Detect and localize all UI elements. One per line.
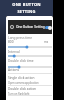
staticText: SETTING bbox=[17, 9, 36, 14]
button[interactable]: One Button Setting bbox=[8, 20, 52, 34]
staticText: ONE BUTTON bbox=[12, 2, 41, 7]
staticText: One Button Setting bbox=[16, 25, 45, 29]
button[interactable]: Slider bbox=[8, 45, 52, 49]
button[interactable]: Toggle one button setting bbox=[45, 25, 52, 30]
button[interactable]: Slider bbox=[8, 65, 52, 69]
button[interactable]: Slider bbox=[8, 54, 52, 58]
button[interactable]: Double click action bbox=[8, 87, 52, 96]
staticText: 800 bbox=[8, 40, 14, 44]
staticText: Double click time bbox=[8, 59, 34, 63]
staticText: ms bbox=[44, 40, 49, 44]
staticText: Single click action bbox=[8, 76, 35, 80]
staticText: Long press time bbox=[8, 36, 33, 40]
button[interactable]: Single click action bbox=[8, 76, 52, 85]
staticText: Turn on flashlight bbox=[8, 92, 30, 96]
staticText: Open camera application bbox=[8, 81, 39, 85]
staticText: Interval bbox=[8, 50, 20, 54]
staticText: Actions bbox=[8, 68, 19, 72]
staticText: Double click action bbox=[8, 87, 37, 91]
